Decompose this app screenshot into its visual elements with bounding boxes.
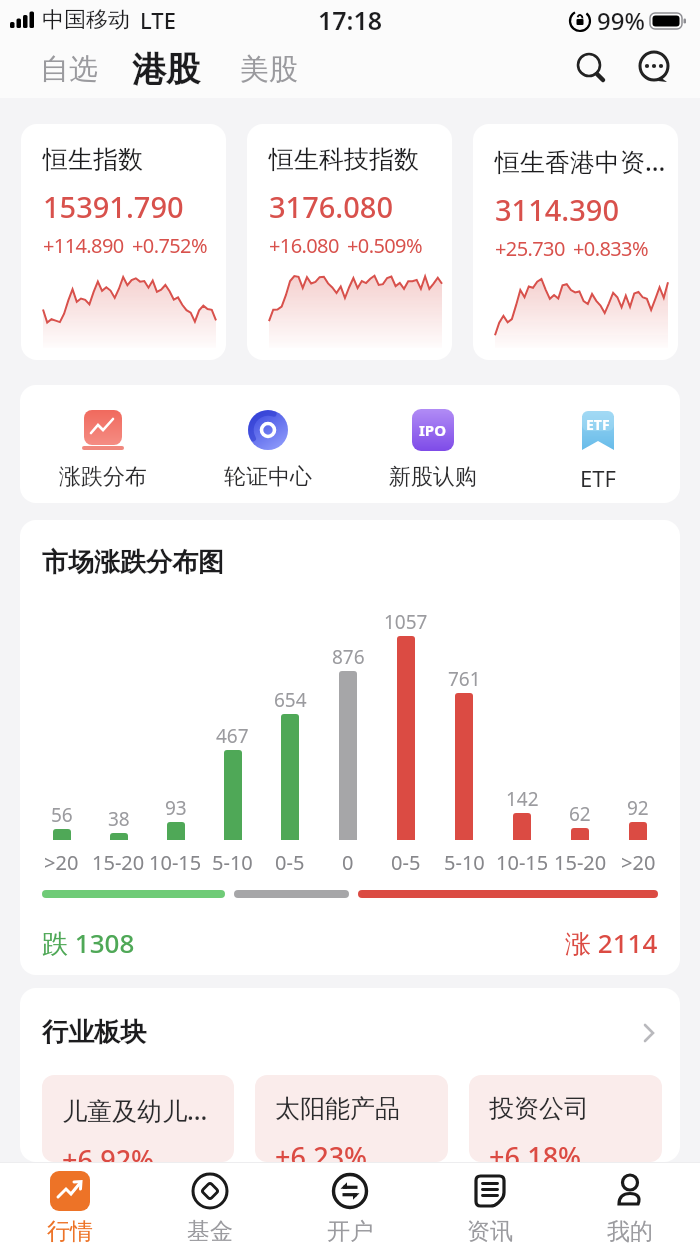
staticText: 3114.390 [495,190,620,229]
staticText: 投资公司 [489,1093,589,1124]
staticText: +0.833% [573,235,648,262]
staticText: +0.752% [132,232,207,259]
staticText: 涨 2114 [565,925,658,961]
staticText: 876 [332,644,365,670]
staticText: 新股认购 [389,463,477,491]
staticText: 5-10 [444,849,485,876]
staticText: LTE [140,5,176,35]
staticText: 行业板块 [42,1016,638,1049]
button[interactable]: 投资公司 [469,1075,662,1162]
staticText: 142 [506,786,539,812]
staticText: +6.23% [275,1138,368,1162]
button[interactable]: 恒生指数 [21,124,226,360]
button[interactable]: 太阳能产品 [255,1075,448,1162]
button[interactable]: 我的 [560,1163,700,1244]
staticText: 开户 [327,1217,373,1244]
staticText: 太阳能产品 [275,1093,400,1124]
button[interactable]: 资讯 [420,1163,560,1244]
staticText: 62 [569,801,591,827]
button[interactable]: 轮证中心 [185,385,350,503]
staticText: >20 [621,849,656,876]
staticText: 10-15 [149,849,202,876]
button[interactable]: 恒生科技指数 [247,124,452,360]
staticText: +25.730 [495,235,565,262]
staticText: 467 [216,723,249,749]
staticText: 93 [165,795,187,821]
staticText: 港股 [132,48,200,91]
staticText: 恒生香港中资... [495,144,666,178]
button[interactable]: 恒生香港中资... [473,124,678,360]
staticText: 美股 [240,51,298,88]
button[interactable]: 港股 [132,48,200,91]
staticText: 0-5 [275,849,305,876]
staticText: 轮证中心 [224,463,312,491]
button[interactable]: 市场涨跌分布图 [20,520,680,975]
button[interactable] [572,49,612,89]
staticText: 92 [627,795,649,821]
staticText: 654 [274,687,307,713]
staticText: 儿童及幼儿... [62,1093,208,1127]
staticText: 761 [448,666,481,692]
staticText: +6.92% [62,1141,155,1162]
staticText: +0.509% [347,232,422,259]
staticText: 恒生指数 [43,144,143,175]
staticText: IPO [419,420,447,440]
staticText: 0 [342,849,354,876]
staticText: 市场涨跌分布图 [42,546,224,579]
button[interactable]: 美股 [240,51,298,88]
button[interactable] [636,49,676,89]
staticText: 跌 1308 [42,925,135,961]
staticText: 15-20 [554,849,607,876]
staticText: 资讯 [467,1217,513,1244]
staticText: 10-15 [496,849,549,876]
staticText: 中国移动 [42,6,130,34]
staticText: +6.18% [489,1138,582,1162]
staticText: 0-5 [391,849,421,876]
staticText: 我的 [607,1217,653,1244]
staticText: 56 [51,802,73,828]
button[interactable]: IPO [350,385,515,503]
staticText: 5-10 [212,849,253,876]
staticText: 自选 [40,51,98,88]
button[interactable]: 行业板块 [42,1016,660,1049]
staticText: 99% [597,4,645,37]
staticText: +114.890 [43,232,124,259]
button[interactable]: 自选 [40,51,98,88]
staticText: 15391.790 [43,187,184,226]
button[interactable]: 基金 [140,1163,280,1244]
staticText: 行情 [47,1217,93,1244]
button[interactable]: ETF [515,385,680,503]
staticText: 38 [108,806,130,832]
staticText: ETF [586,415,610,434]
staticText: 1057 [384,609,428,635]
staticText: 3176.080 [269,187,394,226]
staticText: ETF [580,463,616,493]
button[interactable]: 开户 [280,1163,420,1244]
staticText: 15-20 [92,849,145,876]
button[interactable]: 儿童及幼儿... [42,1075,234,1162]
button[interactable]: 行情 [0,1163,140,1244]
staticText: +16.080 [269,232,339,259]
button[interactable]: 涨跌分布 [20,385,185,503]
staticText: 涨跌分布 [59,463,147,491]
staticText: 恒生科技指数 [269,144,419,175]
staticText: 17:18 [318,3,383,37]
staticText: 基金 [187,1217,233,1244]
staticText: >20 [44,849,79,876]
